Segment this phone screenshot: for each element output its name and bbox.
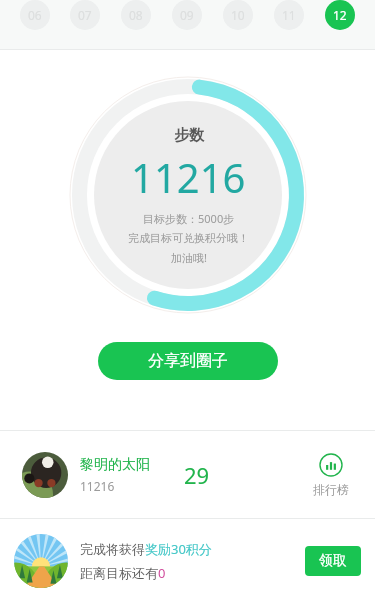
staticText: 目标步数：5000步 xyxy=(143,211,235,226)
button[interactable]: 排行榜 xyxy=(309,449,353,501)
button[interactable]: 黎明的太阳 xyxy=(0,431,375,518)
button[interactable]: 07 xyxy=(70,0,100,30)
staticText: 距离目标还有 xyxy=(80,565,158,581)
button[interactable]: 08 xyxy=(121,0,151,30)
button[interactable]: 12 xyxy=(325,0,355,30)
button[interactable]: 06 xyxy=(20,0,50,30)
staticText: 分享到圈子 xyxy=(148,351,228,371)
staticText: 11216 xyxy=(131,150,246,204)
staticText: 11 xyxy=(282,7,296,23)
staticText: 10 xyxy=(231,7,245,23)
staticText: 完成将获得 xyxy=(80,541,145,557)
button[interactable]: 09 xyxy=(172,0,202,30)
staticText: 奖励30积分 xyxy=(145,540,212,558)
staticText: 11216 xyxy=(80,478,115,494)
staticText: 0 xyxy=(158,564,166,582)
staticText: 08 xyxy=(129,7,143,23)
button[interactable]: 分享到圈子 xyxy=(98,342,278,380)
button[interactable]: 领取 xyxy=(305,546,361,576)
staticText: 步数 xyxy=(174,126,204,145)
staticText: 07 xyxy=(78,7,92,23)
staticText: 06 xyxy=(28,7,42,23)
staticText: 29 xyxy=(184,460,210,490)
staticText: 领取 xyxy=(319,552,347,570)
staticText: 加油哦! xyxy=(171,250,207,265)
staticText: 黎明的太阳 xyxy=(80,456,150,474)
button[interactable]: 11 xyxy=(274,0,304,30)
button[interactable]: 10 xyxy=(223,0,253,30)
staticText: 排行榜 xyxy=(313,482,349,497)
staticText: 12 xyxy=(333,7,347,23)
staticText: 09 xyxy=(180,7,194,23)
staticText: 完成目标可兑换积分哦！ xyxy=(128,231,249,245)
